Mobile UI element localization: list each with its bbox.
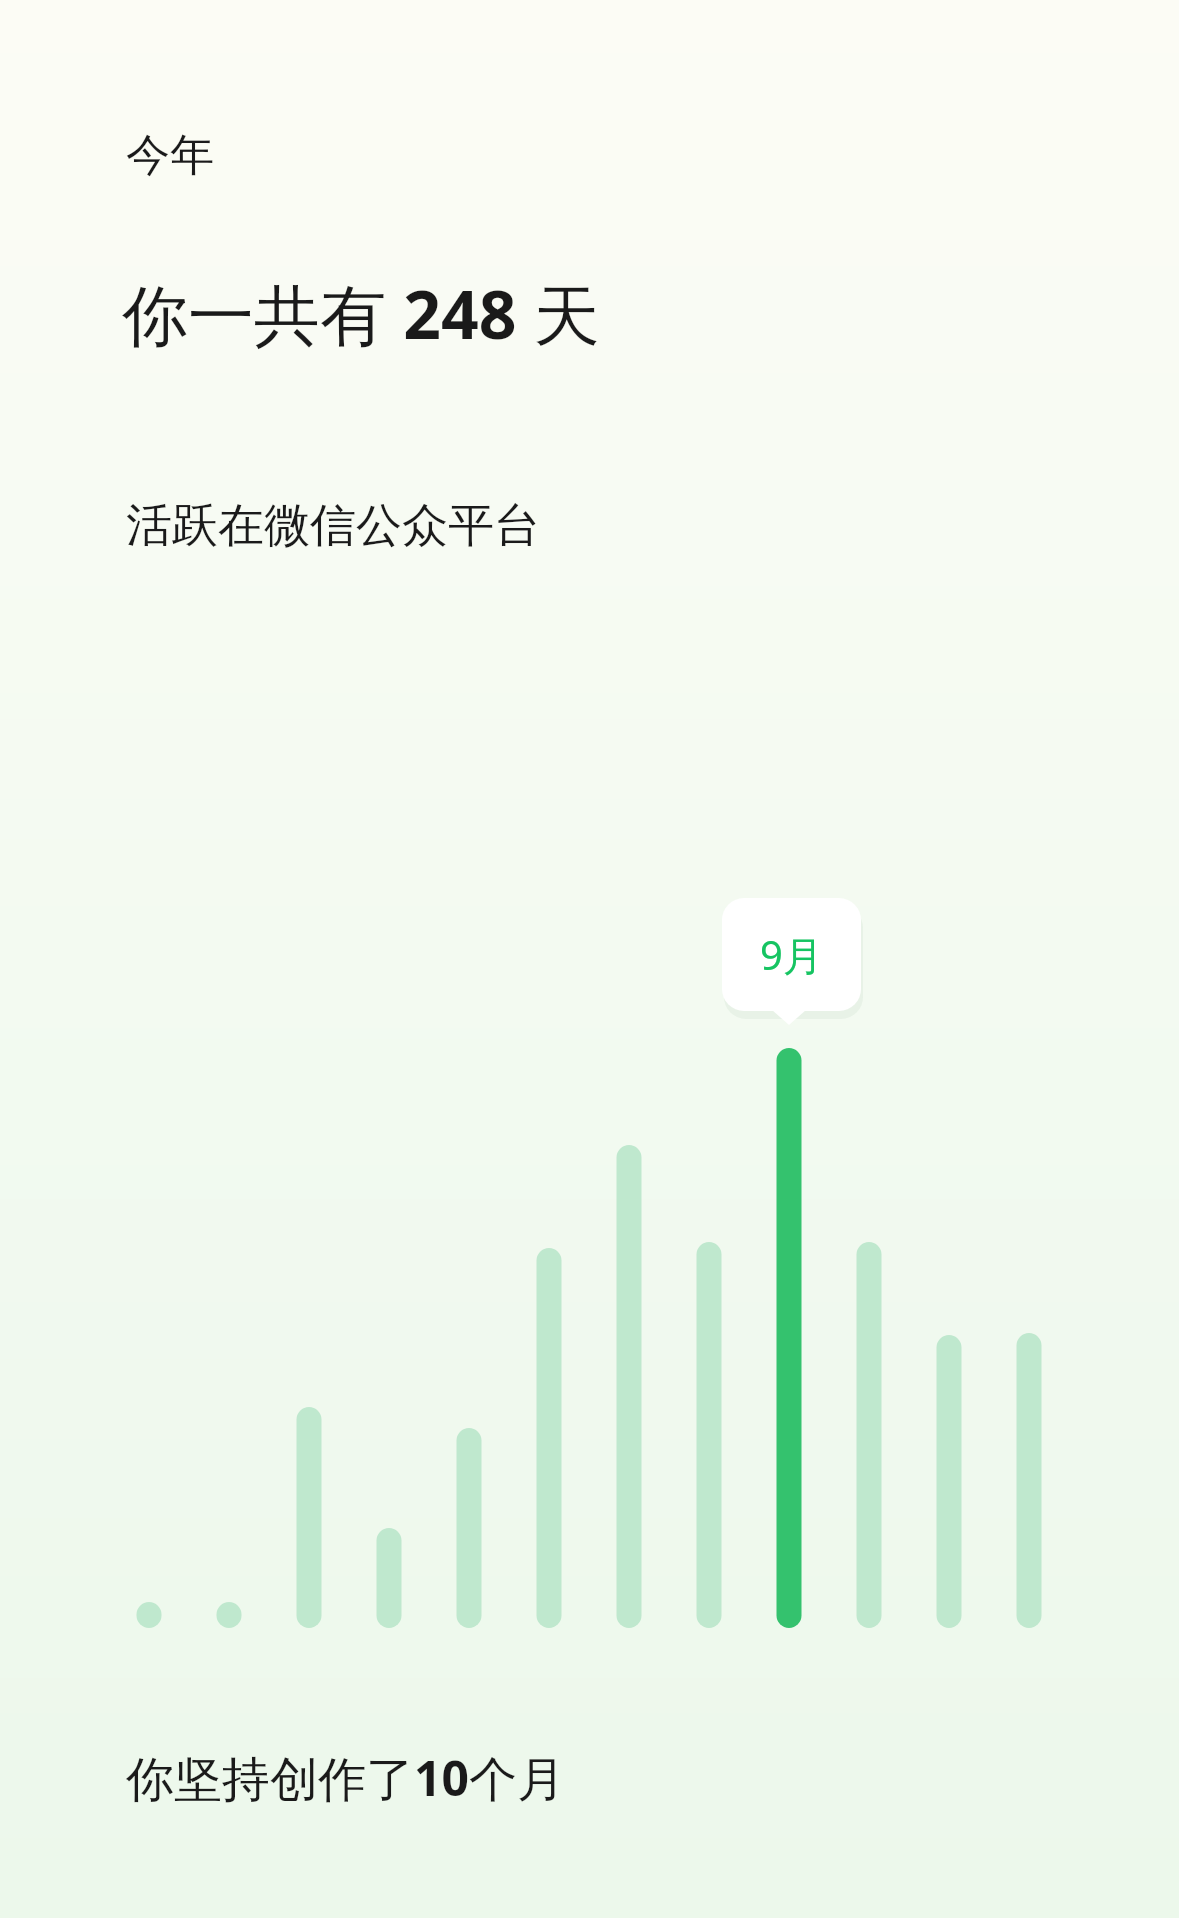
button[interactable]: 年度创作统计 — [0, 0, 1179, 1918]
